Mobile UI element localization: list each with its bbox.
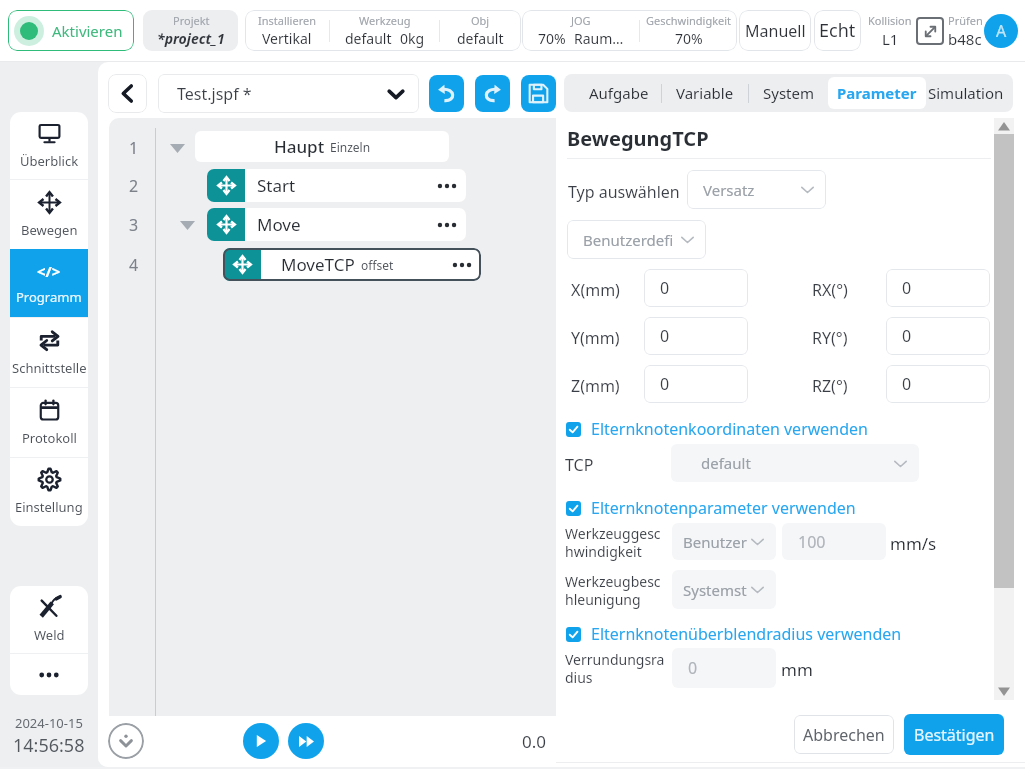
button[interactable]: Nach unten (108, 723, 144, 759)
button[interactable]: 0 (886, 317, 990, 355)
button[interactable]: Mehr Optionen (428, 208, 466, 241)
button[interactable]: Überblick (10, 112, 88, 179)
button[interactable]: Abbrechen (794, 715, 894, 754)
button[interactable]: Protokoll (10, 388, 88, 457)
staticText: Elternknotenkoordinaten verwenden (591, 418, 868, 440)
button[interactable]: Wiederholen (475, 75, 510, 112)
button[interactable]: Elternknotenparameter verwenden (566, 497, 856, 519)
button[interactable]: System (749, 74, 828, 112)
button[interactable]: 0 (644, 317, 748, 355)
staticText: Typ auswählen (568, 181, 680, 203)
staticText: 0 (902, 373, 912, 395)
staticText: Haupt (274, 135, 325, 158)
button[interactable]: Mehr (10, 654, 88, 695)
button[interactable]: Installieren (245, 10, 521, 51)
staticText: TCP (565, 454, 594, 476)
staticText: 0kg (400, 29, 425, 48)
button[interactable]: Bestätigen (904, 714, 1004, 755)
staticText: Benutzer (683, 532, 747, 552)
button[interactable]: Zurück (108, 74, 147, 113)
staticText: 2 (129, 175, 139, 197)
button[interactable]: 0 (886, 365, 990, 403)
staticText: Abbrechen (803, 724, 885, 746)
button[interactable]: Benutzer (672, 523, 776, 560)
staticText: Programm (16, 288, 82, 306)
button[interactable]: default (671, 444, 919, 482)
button[interactable]: Aufgabe (577, 74, 661, 112)
staticText: 0 (902, 325, 912, 347)
staticText: Überblick (20, 152, 79, 170)
button[interactable]: Haupt (195, 131, 449, 162)
staticText: 0.0 (522, 730, 547, 753)
staticText: Test.jspf * (177, 83, 252, 105)
button[interactable]: </> (10, 249, 88, 317)
button[interactable]: Schnittstelle (10, 318, 88, 387)
staticText: Start (257, 174, 296, 197)
staticText: Verrundungsradius (565, 650, 669, 687)
staticText: X(mm) (571, 279, 620, 301)
staticText: 2024-10-15 (15, 714, 83, 732)
button[interactable]: Einstellung (10, 458, 88, 526)
button[interactable]: 100 (782, 523, 886, 560)
staticText: Systemst (683, 580, 747, 600)
button[interactable]: Move (207, 208, 466, 241)
staticText: Elternknotenparameter verwenden (591, 497, 856, 519)
button[interactable]: Versatz (687, 170, 826, 209)
staticText: Vertikal (262, 29, 312, 48)
staticText: Werkzeuggeschwindigkeit (565, 524, 669, 561)
staticText: Parameter (837, 83, 917, 103)
staticText: 3 (129, 214, 139, 236)
staticText: RX(°) (812, 279, 848, 301)
staticText: 0 (902, 277, 912, 299)
button[interactable]: JOG (522, 10, 737, 51)
staticText: mm/s (890, 532, 937, 555)
button[interactable]: Kollision (866, 13, 914, 49)
button[interactable]: Manuell (739, 10, 811, 51)
button[interactable]: Weld (10, 586, 88, 653)
staticText: BewegungTCP (567, 125, 709, 152)
button[interactable]: Simulation (926, 74, 1006, 112)
staticText: 1 (129, 137, 139, 159)
button[interactable]: Prüfen (946, 13, 984, 49)
staticText: L1 (882, 29, 899, 49)
staticText: JOG (571, 13, 591, 28)
staticText: RY(°) (812, 327, 848, 349)
button[interactable]: 0 (644, 365, 748, 403)
button[interactable]: A (984, 14, 1018, 48)
staticText: Benutzerdefinie (583, 230, 682, 250)
button[interactable]: 0 (644, 269, 748, 307)
button[interactable]: Abspielen (243, 723, 279, 759)
button[interactable]: 0 (886, 269, 990, 307)
button[interactable]: Benutzerdefinie (567, 220, 706, 259)
button[interactable]: Aktivieren (8, 10, 134, 51)
button[interactable]: Projekt (143, 10, 238, 51)
button[interactable]: MoveTCP (223, 248, 481, 281)
staticText: RZ(°) (812, 375, 848, 397)
button[interactable]: Vorspulen (288, 723, 324, 759)
staticText: A (996, 20, 1007, 42)
staticText: Werkzeug (359, 13, 411, 28)
button[interactable]: Test.jspf * (158, 74, 419, 113)
staticText: Schnittstelle (12, 359, 87, 377)
staticText: Installieren (258, 13, 316, 28)
button[interactable]: Vollbild (916, 17, 944, 45)
staticText: default (701, 453, 751, 473)
button[interactable]: Mehr Optionen (428, 169, 466, 202)
button[interactable]: 0 (672, 648, 776, 688)
button[interactable]: Echt (814, 10, 861, 51)
button[interactable]: Mehr Optionen (443, 248, 481, 281)
button[interactable]: Start (207, 169, 466, 202)
button[interactable]: Elternknotenüberblendradius verwenden (566, 623, 902, 645)
button[interactable]: Rückgängig (429, 75, 464, 112)
staticText: 70% (538, 29, 566, 48)
button[interactable]: Speichern (521, 75, 556, 112)
button[interactable]: Elternknotenkoordinaten verwenden (566, 418, 868, 440)
staticText: Einstellung (15, 498, 83, 516)
button[interactable]: Parameter (828, 77, 926, 109)
button[interactable]: Systemst (672, 570, 776, 609)
staticText: Manuell (745, 20, 806, 42)
button[interactable]: Bewegen (10, 180, 88, 249)
staticText: Projekt (173, 13, 210, 28)
staticText: 0 (660, 277, 670, 299)
button[interactable]: Variable (662, 74, 748, 112)
